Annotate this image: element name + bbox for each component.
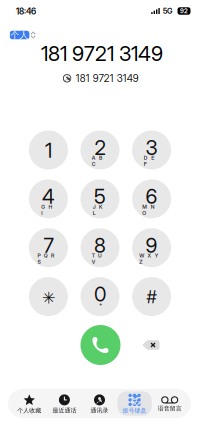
staticText: M N O	[142, 204, 162, 210]
button[interactable]: 语音留言	[152, 389, 187, 418]
staticText: 5G	[163, 6, 172, 15]
button[interactable]: 个人	[10, 31, 36, 39]
staticText: 3	[146, 135, 158, 160]
button[interactable]: 拨号键盘	[117, 389, 152, 418]
button[interactable]: 9	[128, 226, 176, 270]
button[interactable]: ✳	[24, 275, 72, 319]
staticText: 0	[94, 282, 106, 306]
staticText: 最近通话	[52, 407, 76, 414]
button[interactable]: 1	[24, 128, 72, 172]
staticText: 语音留言	[158, 405, 182, 412]
button[interactable]: 个人收藏	[12, 389, 47, 418]
staticText: 8	[94, 233, 106, 258]
staticText: 181 9721 3149	[41, 41, 163, 66]
button[interactable]: 4	[24, 177, 72, 221]
staticText: 通讯录	[90, 407, 108, 414]
button[interactable]: 6	[128, 177, 176, 221]
staticText: 7	[43, 233, 53, 258]
button[interactable]: 3	[128, 128, 176, 172]
button[interactable]: 181 9721 3149	[49, 70, 153, 87]
staticText: +	[99, 301, 102, 308]
button[interactable]: 0	[76, 275, 124, 319]
staticText: 9	[146, 233, 158, 258]
staticText: 92	[180, 7, 188, 15]
staticText: 个人收藏	[17, 407, 41, 414]
button[interactable]: 最近通话	[47, 389, 82, 418]
staticText: 拨号键盘	[123, 407, 147, 414]
staticText: #	[147, 287, 157, 307]
staticText: 2	[94, 135, 105, 160]
staticText: 181 9721 3149	[76, 72, 139, 84]
button[interactable]: Call	[77, 323, 123, 367]
staticText: 1	[45, 138, 52, 163]
staticText: 5	[94, 184, 106, 209]
button[interactable]: 8	[76, 226, 124, 270]
button[interactable]: 通讯录	[82, 389, 117, 418]
staticText: D E F	[144, 155, 160, 161]
staticText: W X Y Z	[139, 252, 165, 259]
staticText: 4	[42, 184, 55, 209]
staticText: 个人	[11, 29, 29, 41]
button[interactable]: Delete	[131, 325, 171, 365]
staticText: A B C	[92, 155, 109, 161]
staticText: ✳	[42, 289, 55, 307]
button[interactable]: 2	[76, 128, 124, 172]
staticText: T U V	[92, 252, 109, 259]
button[interactable]: 7	[24, 226, 72, 270]
staticText: G H I	[41, 204, 57, 210]
button[interactable]: 5	[76, 177, 124, 221]
staticText: J K L	[93, 204, 108, 210]
staticText: 18:46	[16, 6, 36, 17]
staticText: P Q R S	[37, 252, 60, 259]
button[interactable]: #	[128, 275, 176, 319]
staticText: 6	[146, 184, 158, 209]
